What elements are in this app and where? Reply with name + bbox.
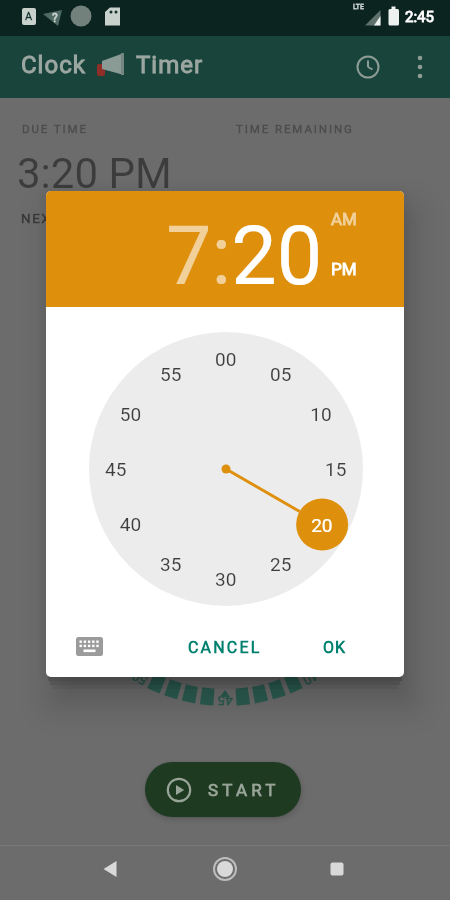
button[interactable]: AM — [318, 204, 370, 234]
staticText: PM — [331, 259, 357, 279]
button[interactable] — [353, 52, 383, 82]
staticText: Clock — [21, 51, 86, 79]
staticText: DUE TIME — [22, 122, 88, 135]
staticText: CANCEL — [188, 638, 262, 657]
staticText: 7:20 — [166, 209, 323, 304]
staticText: NEXT — [21, 210, 61, 226]
button[interactable]: START — [145, 762, 301, 817]
staticText: AM — [331, 209, 357, 229]
button[interactable] — [323, 855, 351, 883]
staticText: 2:45 — [405, 8, 434, 26]
button[interactable] — [96, 855, 124, 883]
button[interactable] — [76, 637, 103, 656]
staticText: TIME REMAINING — [236, 122, 354, 135]
staticText: 3:20 PM — [17, 149, 172, 198]
staticText: Timer — [136, 51, 204, 79]
staticText: START — [208, 780, 280, 800]
button[interactable] — [211, 855, 239, 883]
button[interactable]: PM — [318, 254, 370, 284]
button[interactable]: CANCEL — [181, 633, 269, 661]
staticText: OK — [323, 638, 347, 657]
button[interactable]: OK — [310, 633, 360, 661]
button[interactable] — [408, 52, 438, 82]
